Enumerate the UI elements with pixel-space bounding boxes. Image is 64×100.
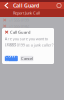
staticText: Are you sure you want to report [5, 36, 48, 47]
staticText: Confirm [5, 53, 17, 64]
staticText: Call Guard [13, 2, 39, 9]
button[interactable]: Cancel [20, 56, 33, 61]
staticText: Cancel [21, 56, 33, 61]
button[interactable]: +1 555 0142 [0, 23, 64, 29]
staticText: +1 555 0199 as a junk caller? [5, 42, 54, 48]
staticText: Call Guard [10, 29, 30, 35]
button[interactable]: Back [0, 2, 13, 9]
button[interactable]: Account [55, 2, 63, 9]
button[interactable]: Confirm [5, 56, 18, 61]
staticText: Report Junk Call [13, 10, 40, 16]
staticText: +1 555 0142 [9, 23, 29, 29]
button[interactable]: +1 555 0199 [0, 17, 64, 23]
